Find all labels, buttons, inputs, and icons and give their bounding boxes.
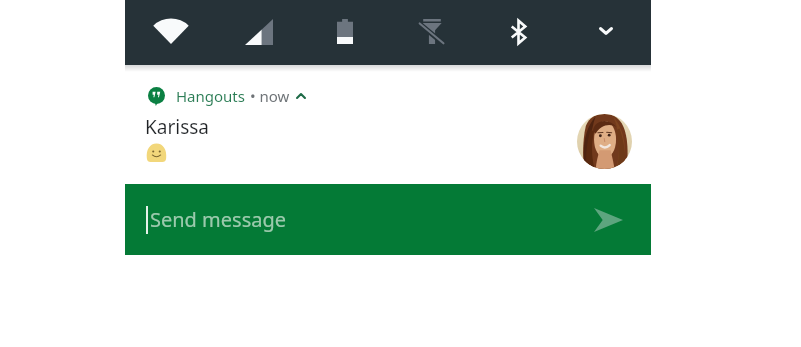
staticText: Hangouts [176,86,245,106]
staticText: Send message [150,206,287,233]
button[interactable]: Send message [125,184,651,255]
button[interactable]: Collapse notification [292,86,310,106]
button[interactable]: Bluetooth [496,0,540,65]
staticText: Karissa [145,114,210,140]
button[interactable]: Send [584,196,632,244]
button[interactable]: Expand quick settings [584,0,628,65]
button[interactable]: Hangouts [148,86,310,106]
button[interactable]: Karissa profile photo [577,114,632,169]
button[interactable]: Battery [323,0,367,65]
staticText: • now [250,86,290,106]
button[interactable]: Wi-Fi [149,0,193,65]
button[interactable]: Mobile signal [237,0,281,65]
button[interactable]: Flashlight off [410,0,454,65]
